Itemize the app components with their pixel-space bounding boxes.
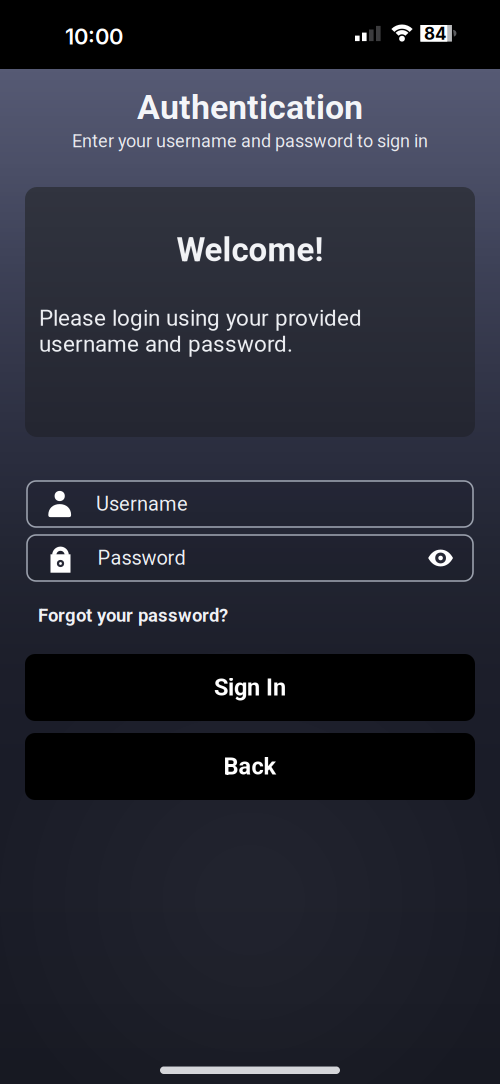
staticText: Password: [97, 546, 185, 570]
button[interactable]: Back: [25, 733, 475, 800]
staticText: Please login using your provided: [39, 305, 362, 331]
staticText: Authentication: [137, 88, 363, 127]
staticText: Back: [223, 753, 276, 780]
button[interactable]: Sign In: [25, 654, 475, 721]
staticText: Welcome!: [176, 231, 323, 269]
staticText: Enter your username and password to sign…: [72, 130, 428, 152]
button[interactable]: Show password: [428, 550, 473, 566]
staticText: 10:00: [65, 23, 123, 50]
staticText: Username: [96, 492, 188, 516]
staticText: Forgot your password?: [38, 605, 228, 626]
button[interactable]: Forgot your password?: [0, 603, 500, 628]
staticText: 84: [424, 23, 446, 44]
staticText: Sign In: [214, 674, 286, 701]
staticText: username and password.: [39, 331, 293, 357]
